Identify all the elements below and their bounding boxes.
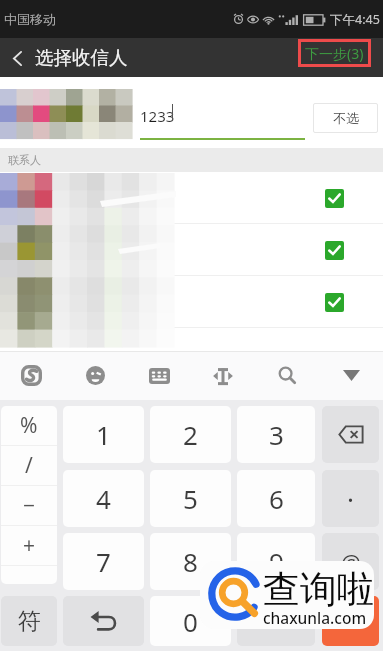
button[interactable]: Send [322,596,379,646]
button[interactable]: 6 [237,470,315,527]
button[interactable]: Move cursor [191,351,255,400]
staticText: 4 [96,481,111,516]
button[interactable] [0,276,383,328]
button[interactable]: / [1,446,57,485]
staticText: 1 [96,417,111,452]
staticText: 0 [183,604,198,639]
staticText: / [25,451,33,480]
staticText: − [23,491,36,520]
staticText: 7 [96,544,111,579]
button[interactable] [0,172,383,224]
staticText: @ [341,547,361,577]
button[interactable]: 3 [237,406,315,463]
staticText: 中国移动 [4,11,56,27]
button[interactable]: 1 [63,406,144,463]
staticText: 下一步(3) [305,44,364,63]
button[interactable]: 不选 [313,103,378,133]
staticText: 选择收信人 [35,46,128,69]
staticText: 6 [269,481,284,516]
button[interactable]: Sogou input method [0,351,63,400]
button[interactable]: Return [63,596,144,646]
staticText: 查询啦 [263,566,374,613]
button[interactable]: Backspace [322,406,379,463]
button[interactable]: 0 [150,596,231,646]
button[interactable]: @ [322,533,379,590]
staticText: 2 [183,417,198,452]
button[interactable]: Keyboard layout [127,351,191,400]
staticText: 1233 [140,106,175,126]
staticText: 3 [269,417,284,452]
button[interactable] [0,224,383,276]
staticText: · [347,481,354,516]
staticText: 下午4:45 [330,11,380,28]
button[interactable]: 9 [237,533,315,590]
button[interactable]: · [322,470,379,527]
button[interactable]: Search [255,351,319,400]
staticText: 5 [183,481,198,516]
button[interactable]: − [1,486,57,525]
staticText: 9 [269,544,284,579]
staticText: % [20,411,38,440]
button[interactable]: + [1,526,57,565]
button[interactable]: Back [0,41,34,75]
button[interactable]: Space [237,596,315,646]
button[interactable]: 符 [1,596,57,646]
button[interactable]: 4 [63,470,144,527]
staticText: 8 [183,544,198,579]
button[interactable]: 5 [150,470,231,527]
button[interactable]: % [1,406,57,445]
button[interactable]: 2 [150,406,231,463]
staticText: 联系人 [8,153,41,167]
staticText: + [23,531,36,560]
staticText: 不选 [333,110,359,126]
staticText: chaxunla.com [263,607,367,628]
button[interactable]: 下一步(3) [298,39,371,67]
button[interactable]: Hide keyboard [319,351,383,400]
button[interactable]: Emoji [63,351,127,400]
button[interactable]: 7 [63,533,144,590]
button[interactable]: 8 [150,533,231,590]
staticText: 符 [18,607,41,636]
